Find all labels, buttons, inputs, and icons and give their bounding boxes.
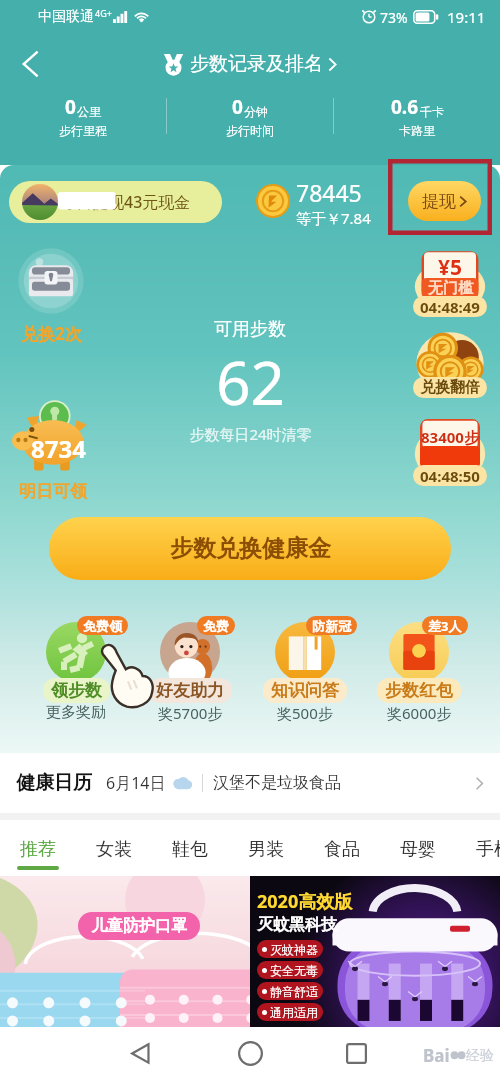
- staticText: 步数记录及排名: [190, 52, 323, 76]
- button[interactable]: 手机: [466, 820, 500, 876]
- button[interactable]: 健康日历: [16, 753, 484, 813]
- staticText: 明日可领: [19, 481, 87, 502]
- staticText: 儿童防护口罩: [91, 916, 187, 936]
- staticText: 6月14日: [106, 772, 166, 794]
- button[interactable]: 食品: [314, 820, 370, 876]
- staticText: 卡路里: [399, 123, 435, 138]
- staticText: 领步数: [51, 680, 102, 701]
- staticText: 灭蚊黑科技: [257, 915, 337, 935]
- staticText: 食品: [324, 838, 360, 861]
- button[interactable]: 差3人: [359, 612, 479, 722]
- staticText: 安全无毒: [270, 963, 318, 978]
- button[interactable]: 母婴: [390, 820, 446, 876]
- staticText: 0.6: [391, 94, 419, 120]
- staticText: 灭蚊神器: [270, 942, 318, 957]
- button[interactable]: 女装: [86, 820, 142, 876]
- button[interactable]: 步数兑换健康金: [49, 517, 451, 580]
- staticText: 通用适用: [270, 1005, 318, 1020]
- staticText: 免费: [203, 618, 229, 634]
- staticText: 差3人: [428, 617, 462, 635]
- staticText: 78445: [296, 177, 362, 208]
- staticText: 等于￥7.84: [296, 208, 371, 227]
- staticText: 0: [232, 94, 243, 120]
- staticText: 83400步: [421, 427, 479, 447]
- staticText: 8734: [31, 432, 86, 465]
- button[interactable]: 兑换2次: [17, 247, 87, 347]
- staticText: 步行时间: [226, 123, 274, 138]
- staticText: 2020高效版: [257, 889, 353, 914]
- staticText: 兑换2次: [21, 322, 82, 345]
- button[interactable]: 步数记录及排名: [163, 52, 337, 76]
- staticText: 兑换翻倍: [420, 378, 480, 397]
- staticText: 女装: [96, 838, 132, 861]
- staticText: 男装: [248, 838, 284, 861]
- staticText: 更多奖励: [46, 703, 106, 722]
- button[interactable]: Home: [224, 1027, 276, 1079]
- button[interactable]: 8734: [8, 396, 110, 506]
- staticText: 中国联通: [38, 8, 94, 26]
- staticText: 母婴: [400, 838, 436, 861]
- button[interactable]: 每日提现43元现金: [9, 181, 222, 223]
- staticText: 可用步数: [214, 318, 286, 341]
- button[interactable]: 免费领: [16, 612, 136, 722]
- staticText: ¥5: [438, 253, 463, 282]
- staticText: 鞋包: [172, 838, 208, 861]
- staticText: 19:11: [447, 7, 486, 27]
- staticText: 奖5700步: [158, 703, 223, 723]
- staticText: 步数每日24时清零: [189, 424, 312, 444]
- button[interactable]: Recents: [330, 1027, 382, 1079]
- button[interactable]: Back: [8, 42, 52, 86]
- button[interactable]: 83400步: [406, 418, 494, 490]
- button[interactable]: 鞋包: [162, 820, 218, 876]
- staticText: 知识问答: [271, 680, 339, 701]
- staticText: 奖6000步: [387, 703, 452, 723]
- staticText: 每日提现43元现金: [60, 191, 191, 213]
- button[interactable]: ¥5: [406, 249, 494, 321]
- staticText: 分钟: [244, 104, 268, 119]
- staticText: 免费领: [83, 618, 122, 634]
- staticText: 04:48:49: [420, 297, 480, 317]
- staticText: 04:48:50: [420, 466, 480, 486]
- staticText: 汉堡不是垃圾食品: [213, 773, 341, 793]
- staticText: 手机: [476, 838, 500, 861]
- staticText: 步行里程: [59, 123, 107, 138]
- staticText: 0: [65, 94, 76, 120]
- staticText: 步数红包: [385, 680, 453, 701]
- staticText: 经验: [466, 1047, 494, 1065]
- staticText: 奖500步: [277, 703, 333, 723]
- button[interactable]: 防新冠: [245, 612, 365, 722]
- button[interactable]: 2020高效版: [250, 876, 500, 1027]
- button[interactable]: 免费: [130, 612, 250, 722]
- staticText: 4G+: [95, 7, 112, 19]
- button[interactable]: 提现: [408, 181, 481, 221]
- staticText: 防新冠: [312, 618, 351, 634]
- button[interactable]: 兑换翻倍: [406, 330, 494, 402]
- staticText: 静音舒适: [270, 984, 318, 999]
- staticText: Bai: [423, 1044, 450, 1067]
- staticText: 无门槛: [428, 279, 473, 298]
- staticText: 62: [216, 341, 285, 423]
- staticText: 提现: [422, 191, 456, 212]
- staticText: 推荐: [20, 838, 56, 861]
- staticText: 步数兑换健康金: [170, 534, 331, 563]
- button[interactable]: 推荐: [10, 820, 66, 876]
- button[interactable]: 儿童防护口罩: [0, 876, 250, 1027]
- button[interactable]: Back: [114, 1027, 166, 1079]
- staticText: 健康日历: [16, 771, 92, 795]
- staticText: 73%: [380, 8, 408, 27]
- staticText: 公里: [77, 104, 101, 119]
- button[interactable]: 男装: [238, 820, 294, 876]
- staticText: 千卡: [420, 104, 444, 119]
- staticText: 好友助力: [156, 680, 224, 701]
